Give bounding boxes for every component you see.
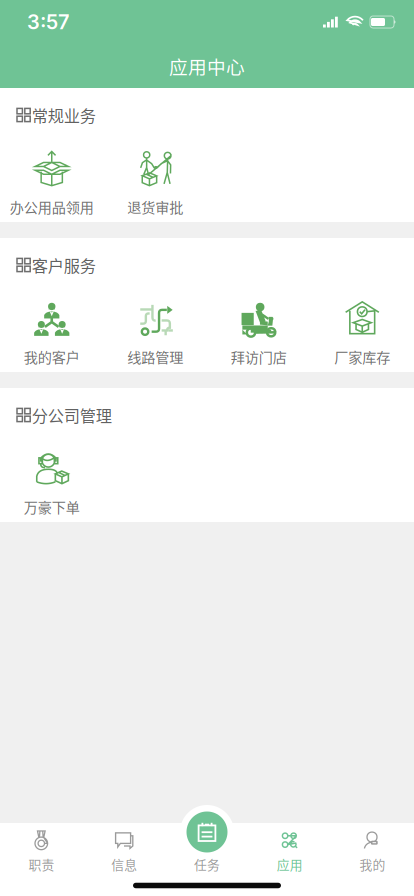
button[interactable]: 厂家库存: [310, 292, 414, 372]
staticText: 3:57: [27, 10, 69, 34]
button[interactable]: 拜访门店: [207, 292, 310, 372]
staticText: 分公司管理: [32, 403, 112, 427]
staticText: 应用: [277, 855, 303, 873]
button[interactable]: 任务: [166, 823, 248, 875]
button[interactable]: 退货审批: [103, 142, 207, 222]
staticText: 办公用品领用: [10, 196, 94, 217]
staticText: 任务: [194, 855, 220, 873]
staticText: 拜访门店: [231, 346, 287, 367]
staticText: 信息: [111, 855, 137, 873]
staticText: 退货审批: [127, 196, 183, 217]
staticText: 常规业务: [32, 103, 96, 127]
button[interactable]: 信息: [83, 823, 166, 875]
button[interactable]: 万豪下单: [0, 442, 103, 522]
staticText: 线路管理: [127, 346, 183, 367]
staticText: 我的客户: [24, 346, 80, 367]
button[interactable]: 我的: [331, 823, 414, 875]
staticText: 客户服务: [32, 253, 96, 277]
staticText: 万豪下单: [24, 496, 80, 517]
staticText: 我的: [360, 855, 386, 873]
button[interactable]: 职责: [0, 823, 83, 875]
staticText: 厂家库存: [334, 346, 390, 367]
button[interactable]: 办公用品领用: [0, 142, 103, 222]
button[interactable]: 任务: [180, 805, 234, 859]
button[interactable]: 应用: [248, 823, 331, 875]
button[interactable]: 线路管理: [103, 292, 207, 372]
staticText: 应用中心: [169, 52, 245, 79]
staticText: 职责: [28, 855, 54, 873]
button[interactable]: 我的客户: [0, 292, 103, 372]
